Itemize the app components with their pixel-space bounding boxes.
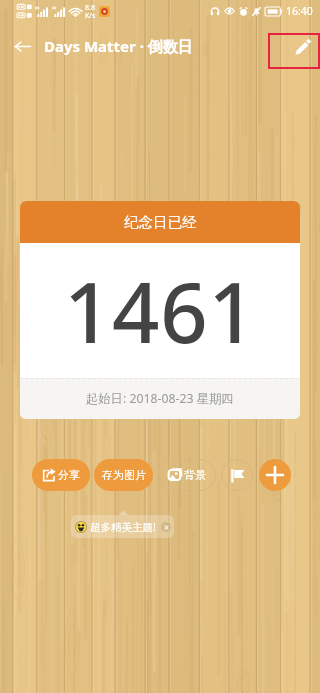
button[interactable]: Back bbox=[0, 24, 44, 68]
staticText: 纪念日已经 bbox=[124, 213, 197, 231]
staticText: 起始日: 2018-08-23 星期四 bbox=[86, 390, 234, 407]
button[interactable]: Close bbox=[161, 522, 171, 532]
button[interactable]: 背景 bbox=[158, 459, 216, 491]
button[interactable]: Edit bbox=[268, 33, 320, 69]
staticText: Days Matter · 倒数日 bbox=[44, 36, 193, 56]
staticText: 1461 bbox=[64, 254, 257, 367]
button[interactable]: 纪念日已经 bbox=[20, 201, 300, 419]
button[interactable]: Add bbox=[259, 459, 291, 491]
button[interactable]: 分享 bbox=[32, 459, 90, 491]
button[interactable]: 存为图片 bbox=[94, 459, 153, 491]
staticText: 分享 bbox=[58, 468, 80, 482]
staticText: 16:40 bbox=[286, 4, 313, 18]
button[interactable]: 超多精美主题! bbox=[71, 515, 174, 538]
staticText: 8.8 K/s bbox=[85, 3, 96, 20]
staticText: 存为图片 bbox=[102, 468, 146, 482]
staticText: 背景 bbox=[184, 468, 206, 482]
staticText: 超多精美主题! bbox=[90, 520, 156, 534]
button[interactable]: Flag bbox=[221, 459, 253, 491]
